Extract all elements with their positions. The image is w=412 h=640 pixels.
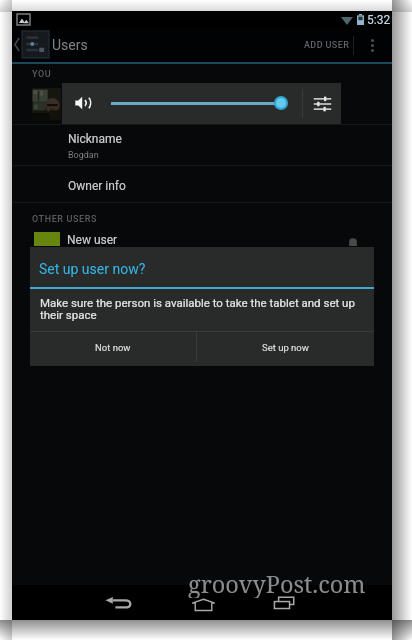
staticText: Not now [95,342,131,353]
staticText: Owner info [68,179,126,193]
button[interactable]: Sound settings [303,83,341,124]
button[interactable]: Recent apps [266,591,302,615]
button[interactable] [12,82,392,124]
staticText: 5:32 [367,13,391,27]
staticText: YOU [32,69,52,80]
staticText: Make sure the person is available to tak… [40,296,372,322]
staticText: Bogdan [68,150,99,161]
staticText: Set up user now? [39,261,146,277]
staticText: groovyPost.com [188,568,366,598]
staticText: OTHER USERS [32,214,97,225]
staticText: New user [67,233,118,247]
staticText: Set up now [262,342,309,353]
button[interactable]: More options [362,29,382,62]
button[interactable] [12,166,392,202]
button[interactable] [12,229,392,255]
button[interactable]: Not now [30,332,196,362]
staticText: Users [52,37,88,53]
button[interactable]: Set up now [197,332,374,362]
button[interactable]: Navigate up [22,31,49,58]
button[interactable] [12,125,392,165]
button[interactable]: Back [100,590,136,614]
staticText: Nickname [68,132,122,146]
button[interactable]: ADD USER [303,29,351,62]
button[interactable]: Home [185,593,221,617]
staticText: ADD USER [304,40,350,51]
